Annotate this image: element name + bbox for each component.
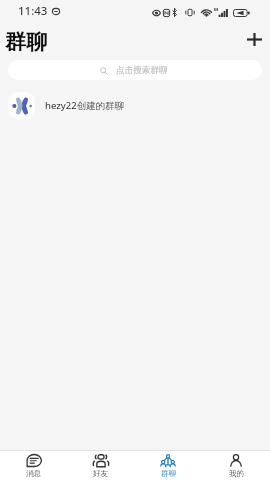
staticText: 我的 [229,469,244,478]
staticText: 群聊 [161,469,176,478]
button[interactable]: 我的 [202,451,270,478]
staticText: 消息 [26,469,41,478]
staticText: 点击搜索群聊 [116,65,168,76]
button[interactable]: hezy22创建的群聊 [0,88,270,122]
button[interactable]: 群聊 [134,451,202,478]
button[interactable]: 消息 [0,451,67,478]
button[interactable]: 点击搜索群聊 [8,60,262,80]
staticText: hezy22创建的群聊 [45,99,125,112]
staticText: 11:43 [18,3,48,19]
button[interactable]: Add group [241,26,267,52]
button[interactable]: 好友 [67,451,134,478]
staticText: 好友 [93,469,108,478]
staticText: 群聊 [5,29,47,55]
